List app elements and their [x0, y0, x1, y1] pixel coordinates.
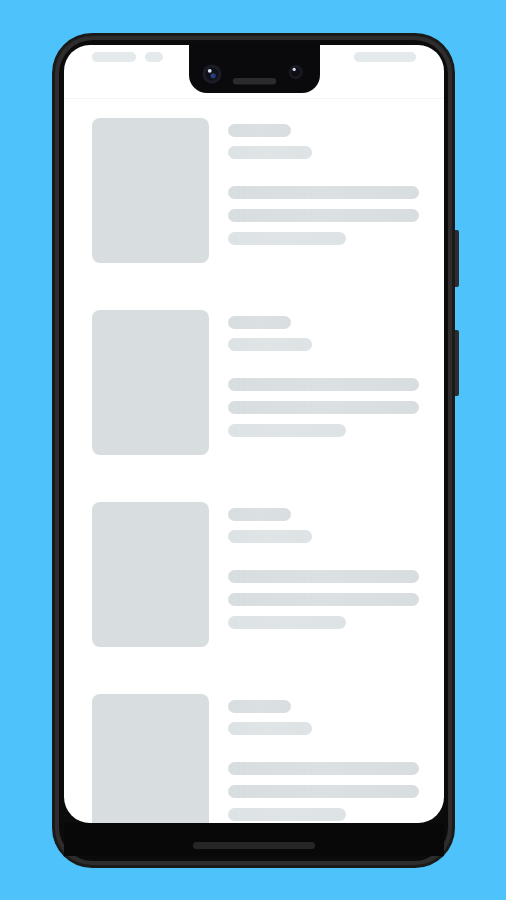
button[interactable]	[64, 694, 444, 823]
button[interactable]	[64, 310, 444, 455]
other: Power button	[450, 330, 459, 396]
button[interactable]	[64, 118, 444, 263]
other: Volume button	[450, 230, 459, 287]
button[interactable]	[64, 502, 444, 647]
